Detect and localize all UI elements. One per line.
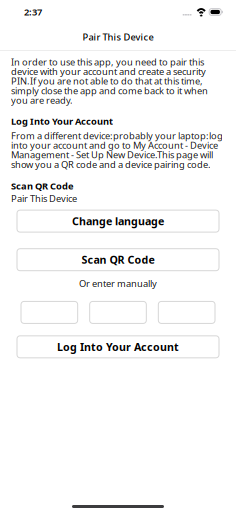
staticText: Change language (72, 214, 164, 228)
staticText: Log Into Your Account (57, 340, 179, 354)
button[interactable]: Pairing code field (158, 301, 215, 323)
staticText: Scan QR Code (81, 253, 154, 267)
staticText: Or enter manually (79, 277, 157, 289)
staticText: Pair This Device (11, 192, 77, 204)
staticText: Log Into Your Account (11, 115, 113, 127)
staticText: In order to use this app, you need to pa… (11, 56, 208, 106)
button[interactable]: Scan QR Code (17, 249, 219, 271)
button[interactable]: Log Into Your Account (17, 336, 219, 358)
button[interactable]: Pairing code field (90, 301, 146, 323)
staticText: 2:37 (24, 6, 42, 18)
button[interactable]: Change language (17, 210, 219, 232)
staticText: From a different device:probably your la… (11, 129, 223, 171)
staticText: Pair This Device (82, 31, 153, 43)
button[interactable]: Pairing code field (21, 301, 78, 323)
staticText: Scan QR Code (11, 180, 74, 192)
